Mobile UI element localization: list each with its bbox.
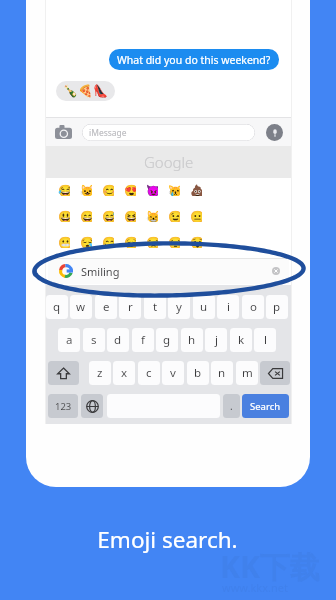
button[interactable]: g [156, 328, 178, 352]
button[interactable]: What did you do this weekend? [109, 49, 279, 70]
button[interactable]: n [211, 361, 233, 385]
staticText: KK下载 [220, 546, 320, 587]
staticText: 😄 [80, 210, 92, 222]
staticText: b [194, 365, 202, 381]
staticText: iMessage [89, 127, 127, 139]
staticText: 😯 [190, 236, 202, 248]
button[interactable]: k [230, 328, 252, 352]
button[interactable]: t [144, 295, 166, 319]
button[interactable]: 🍾🍕👠 [56, 81, 115, 101]
button[interactable]: iMessage [82, 124, 255, 141]
button[interactable]: 😿 [168, 184, 180, 196]
staticText: 😔 [168, 236, 180, 248]
button[interactable]: 😐 [190, 210, 202, 222]
staticText: Smiling [81, 264, 120, 279]
staticText: d [114, 332, 122, 348]
staticText: h [188, 332, 196, 348]
button[interactable]: 😸 [146, 210, 158, 222]
button[interactable]: 😉 [168, 210, 180, 222]
button[interactable]: 😺 [80, 184, 92, 196]
button[interactable]: q [46, 295, 68, 319]
button[interactable]: 😄 [80, 210, 92, 222]
button[interactable]: . [223, 394, 240, 418]
button[interactable]: d [107, 328, 129, 352]
staticText: . [230, 399, 233, 413]
staticText: u [200, 299, 208, 315]
button[interactable]: Shift [48, 361, 79, 385]
staticText: s [91, 332, 97, 348]
button[interactable]: 😔 [168, 236, 180, 248]
button[interactable]: r [119, 295, 141, 319]
button[interactable]: i [217, 295, 239, 319]
button[interactable]: 😌 [124, 236, 136, 248]
button[interactable]: 😆 [124, 210, 136, 222]
button[interactable]: s [83, 328, 105, 352]
button[interactable]: 😬 [58, 236, 70, 248]
staticText: l [264, 332, 267, 348]
button[interactable]: 😈 [146, 184, 158, 196]
button[interactable]: 😪 [80, 236, 92, 248]
button[interactable]: Microphone [266, 124, 283, 141]
button[interactable]: Search [242, 394, 289, 418]
button[interactable]: a [58, 328, 80, 352]
button[interactable]: 123 [48, 394, 78, 418]
staticText: k [238, 332, 245, 348]
staticText: 😌 [124, 236, 136, 248]
button[interactable]: p [266, 295, 288, 319]
button[interactable]: v [162, 361, 184, 385]
button[interactable]: 😅 [102, 210, 114, 222]
staticText: 😅 [102, 210, 114, 222]
button[interactable]: 😯 [190, 236, 202, 248]
button[interactable]: x [113, 361, 135, 385]
button[interactable]: b [187, 361, 209, 385]
button[interactable]: h [181, 328, 203, 352]
button[interactable]: 😒 [146, 236, 158, 248]
staticText: 😺 [80, 184, 92, 196]
button[interactable]: e [95, 295, 117, 319]
button[interactable]: Backspace [260, 361, 290, 385]
staticText: g [163, 332, 171, 348]
button[interactable]: c [138, 361, 160, 385]
button[interactable]: 😊 [102, 184, 114, 196]
button[interactable]: Clear [272, 267, 280, 275]
button[interactable]: u [193, 295, 215, 319]
staticText: m [242, 365, 253, 381]
staticText: n [218, 365, 226, 381]
button[interactable]: y [168, 295, 190, 319]
staticText: 💩 [190, 184, 202, 196]
staticText: j [215, 332, 218, 348]
button[interactable]: 💩 [190, 184, 202, 196]
staticText: 😸 [146, 210, 158, 222]
button[interactable]: 😍 [124, 184, 136, 196]
button[interactable]: f [132, 328, 154, 352]
staticText: 😈 [146, 184, 158, 196]
button[interactable]: m [236, 361, 258, 385]
staticText: t [153, 299, 158, 315]
staticText: i [227, 299, 230, 315]
button[interactable]: Change language [81, 394, 103, 418]
button[interactable]: Smiling [48, 258, 289, 284]
staticText: 😿 [168, 184, 180, 196]
button[interactable]: z [89, 361, 111, 385]
staticText: 😒 [146, 236, 158, 248]
button[interactable]: j [205, 328, 227, 352]
button[interactable]: 😋 [102, 236, 114, 248]
staticText: z [97, 365, 103, 381]
staticText: 😪 [80, 236, 92, 248]
staticText: 😃 [58, 210, 70, 222]
staticText: Google [144, 152, 194, 172]
staticText: 😍 [124, 184, 136, 196]
staticText: 😬 [58, 236, 70, 248]
staticText: 😆 [124, 210, 136, 222]
button[interactable]: l [254, 328, 276, 352]
button[interactable]: Camera [54, 123, 72, 141]
staticText: 😂 [58, 184, 70, 196]
button[interactable]: 😂 [58, 184, 70, 196]
staticText: o [250, 299, 257, 315]
staticText: y [176, 299, 182, 315]
button[interactable]: 😃 [58, 210, 70, 222]
button[interactable]: o [242, 295, 264, 319]
button[interactable]: w [70, 295, 92, 319]
